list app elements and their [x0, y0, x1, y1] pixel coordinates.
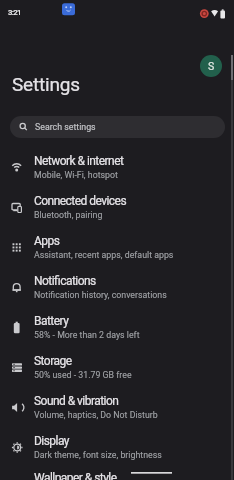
staticText: Search settings — [35, 122, 96, 132]
button[interactable]: Display — [0, 427, 234, 467]
staticText: Network & internet — [34, 154, 124, 168]
staticText: Connected devices — [34, 194, 127, 208]
staticText: 50% used - 31.79 GB free — [34, 370, 132, 380]
button[interactable]: Connected devices — [0, 187, 234, 227]
button[interactable]: Apps — [0, 227, 234, 267]
button[interactable]: Network & internet — [0, 147, 234, 187]
staticText: Notification history, conversations — [34, 290, 167, 300]
staticText: Display — [34, 434, 69, 448]
staticText: Apps — [34, 234, 60, 248]
staticText: Wallpaper & style — [34, 471, 117, 480]
button[interactable]: Wallpaper & style — [0, 467, 234, 480]
button[interactable]: Storage — [0, 347, 234, 387]
staticText: 58% - More than 2 days left — [34, 330, 140, 340]
button[interactable]: S — [200, 55, 222, 77]
staticText: Mobile, Wi-Fi, hotspot — [34, 170, 118, 180]
staticText: S — [208, 60, 215, 72]
staticText: Assistant, recent apps, default apps — [34, 250, 174, 260]
staticText: 3:21 — [8, 8, 21, 17]
staticText: Sound & vibration — [34, 394, 119, 408]
button[interactable]: Notifications — [0, 267, 234, 307]
button[interactable]: Search settings — [10, 116, 225, 138]
staticText: Dark theme, font size, brightness — [34, 450, 162, 460]
staticText: Battery — [34, 314, 69, 328]
staticText: Bluetooth, pairing — [34, 210, 103, 220]
staticText: Settings — [12, 73, 80, 95]
button[interactable]: Sound & vibration — [0, 387, 234, 427]
staticText: Storage — [34, 354, 72, 368]
staticText: Volume, haptics, Do Not Disturb — [34, 410, 158, 420]
button[interactable]: Battery — [0, 307, 234, 347]
staticText: Notifications — [34, 274, 96, 288]
